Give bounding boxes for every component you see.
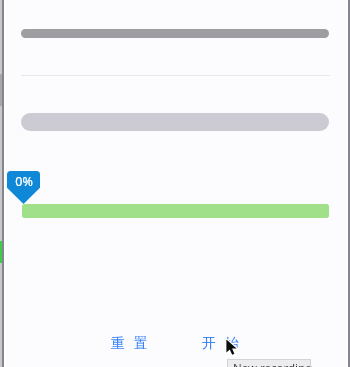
button[interactable]: 重 置 <box>102 330 159 354</box>
button[interactable]: 开 始 <box>193 330 250 354</box>
other: Slider value 0 percent <box>7 171 40 204</box>
staticText: 重 置 <box>111 333 151 352</box>
staticText: New recording <box>233 360 313 367</box>
other: Title <box>21 29 329 38</box>
staticText: 开 始 <box>202 333 242 352</box>
button[interactable]: Recording progress slider <box>22 204 329 218</box>
staticText: 0% <box>15 173 33 190</box>
other: Waveform <box>21 113 329 131</box>
